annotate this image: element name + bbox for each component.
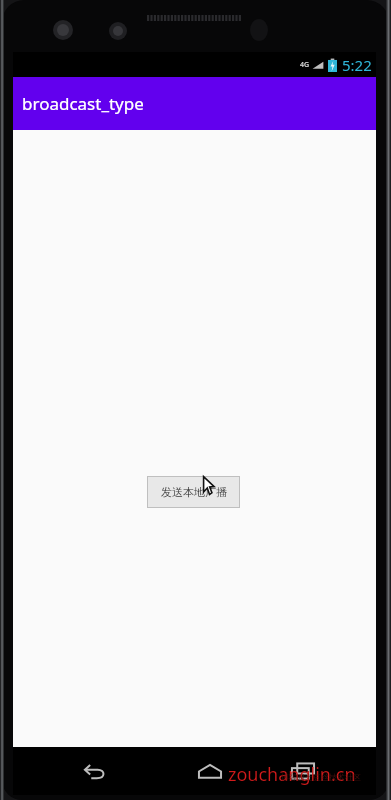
staticText: 发送本地广播: [161, 485, 227, 499]
staticText: 博客园土豆丝技术社区: [281, 772, 361, 782]
button[interactable]: 发送本地广播: [147, 476, 240, 508]
button[interactable]: Back: [69, 747, 121, 795]
staticText: broadcast_type: [22, 92, 144, 115]
staticText: 4G: [300, 60, 310, 70]
button[interactable]: Home: [184, 747, 236, 795]
button[interactable]: Recent apps: [277, 747, 329, 795]
staticText: zouchanglin.cn: [228, 762, 356, 787]
staticText: 5:22: [342, 55, 372, 75]
